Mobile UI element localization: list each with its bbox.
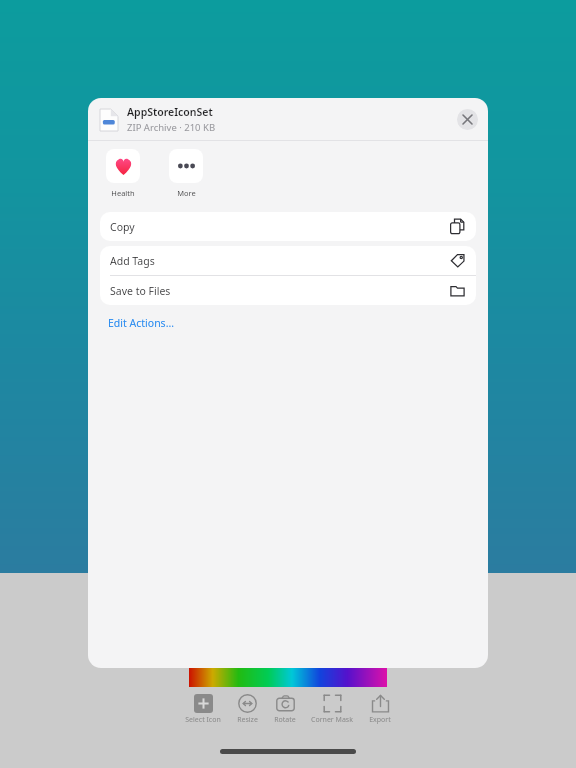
staticText: ZIP Archive · 210 KB	[127, 121, 216, 134]
staticText: Resize	[237, 715, 258, 725]
other: Add Tags	[450, 253, 465, 268]
button[interactable]: Export	[368, 694, 392, 725]
staticText: AppStoreIconSet	[127, 105, 213, 119]
button[interactable]: Corner Mask	[310, 694, 354, 725]
button[interactable]: Health	[102, 149, 144, 198]
button[interactable]: Save to Files	[100, 276, 476, 305]
staticText: Rotate	[274, 715, 296, 725]
other: Save to Files	[450, 283, 465, 298]
button[interactable]: Close	[457, 109, 478, 130]
staticText: Copy	[110, 220, 135, 234]
button[interactable]: Edit Actions...	[88, 312, 488, 336]
staticText: Add Tags	[110, 254, 155, 268]
button[interactable]: Add Tags	[100, 246, 476, 275]
staticText: Edit Actions...	[108, 316, 175, 330]
button[interactable]: More	[165, 149, 207, 198]
other: Copy	[450, 219, 465, 234]
other: Corner Mask	[323, 694, 342, 713]
staticText: Export	[369, 715, 391, 725]
button[interactable]: Resize	[236, 694, 259, 725]
button[interactable]: Copy	[100, 212, 476, 241]
button[interactable]: Select Icon	[184, 694, 222, 725]
staticText: More	[177, 188, 196, 198]
staticText: Corner Mask	[311, 715, 353, 725]
staticText: Save to Files	[110, 284, 171, 298]
other: Resize	[238, 694, 257, 713]
other: Select Icon	[194, 694, 213, 713]
other: Export	[371, 694, 390, 713]
button[interactable]: Rotate	[273, 694, 297, 725]
staticText: Select Icon	[185, 715, 221, 725]
other: Rotate	[276, 694, 295, 713]
staticText: Health	[111, 188, 135, 198]
